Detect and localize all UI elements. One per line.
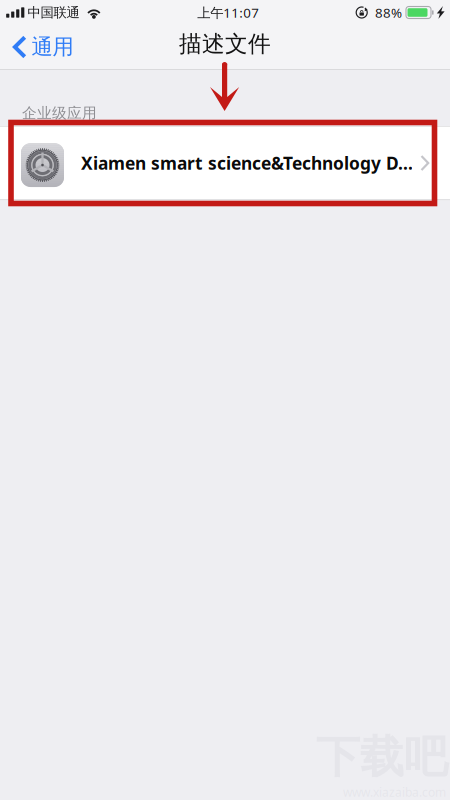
staticText: 中国联通 xyxy=(27,4,79,21)
staticText: 描述文件 xyxy=(179,30,271,58)
staticText: 88% xyxy=(375,4,402,21)
button[interactable]: 通用 xyxy=(0,25,84,69)
staticText: Xiamen smart science&Technology D... xyxy=(81,151,413,174)
button[interactable]: Xiamen smart science&Technology D... xyxy=(0,127,450,199)
staticText: 通用 xyxy=(32,34,74,60)
staticText: 企业级应用 xyxy=(22,104,97,122)
staticText: 下载吧 xyxy=(316,730,448,784)
staticText: 上午11:07 xyxy=(197,4,259,21)
